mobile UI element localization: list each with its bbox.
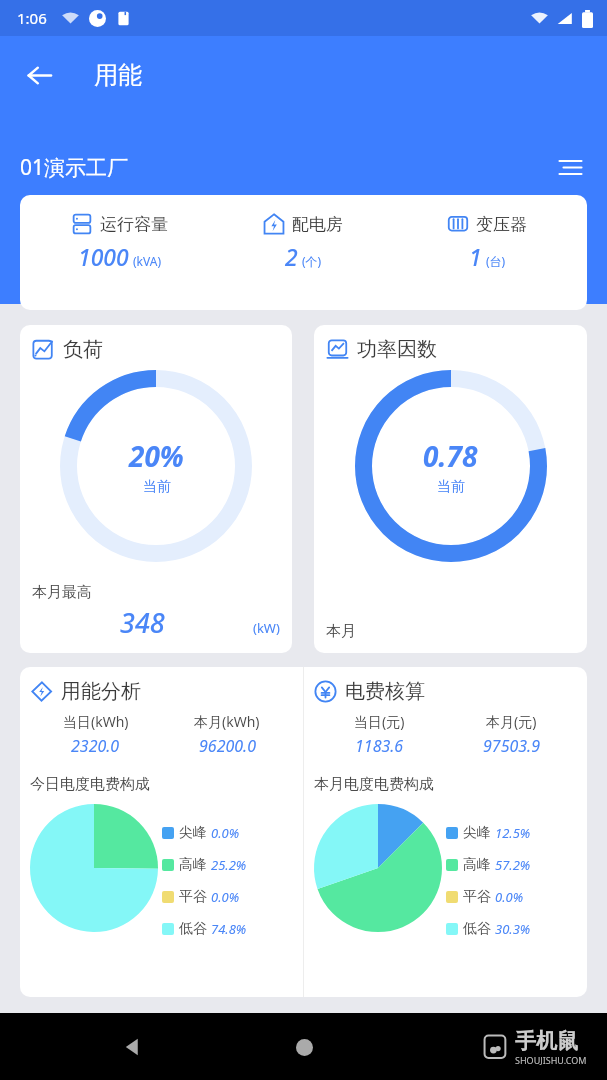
button[interactable]: Back	[20, 56, 58, 94]
staticText: 配电房	[292, 214, 343, 235]
staticText: 本月(元)	[486, 712, 537, 731]
staticText: 01演示工厂	[20, 153, 129, 182]
staticText: (kVA)	[133, 253, 161, 269]
staticText: 功率因数	[357, 337, 437, 362]
staticText: 1183.6	[355, 735, 404, 757]
staticText: 本月最高	[32, 583, 92, 602]
staticText: 74.8%	[211, 920, 247, 938]
staticText: 尖峰	[179, 824, 207, 842]
staticText: 平谷	[179, 888, 207, 906]
staticText: 本月(kWh)	[194, 712, 260, 731]
staticText: 负荷	[63, 337, 103, 362]
button[interactable]: 功率因数	[314, 325, 587, 653]
button[interactable]: 运行容量	[20, 195, 587, 310]
button[interactable]: 配电房	[211, 213, 395, 272]
staticText: 用能分析	[61, 679, 141, 704]
staticText: 20%	[129, 437, 184, 475]
button[interactable]: 用能分析	[20, 667, 303, 997]
button[interactable]: 负荷	[20, 325, 292, 653]
staticText: 低谷	[463, 920, 491, 938]
staticText: 0.78	[423, 437, 478, 475]
staticText: 本月	[326, 622, 356, 641]
staticText: 2320.0	[71, 735, 120, 757]
staticText: 12.5%	[495, 824, 531, 842]
staticText: 今日电度电费构成	[30, 775, 150, 794]
button[interactable]: Home	[282, 1025, 326, 1069]
button[interactable]: 运行容量	[28, 213, 211, 272]
staticText: 0.0%	[495, 888, 524, 906]
staticText: 电费核算	[345, 679, 425, 704]
staticText: 变压器	[476, 214, 527, 235]
button[interactable]: 变压器	[395, 213, 579, 272]
staticText: 348	[120, 604, 165, 641]
staticText: (kW)	[253, 619, 280, 637]
staticText: 0.0%	[211, 824, 240, 842]
button[interactable]: 电费核算	[304, 667, 587, 997]
staticText: 96200.0	[199, 735, 256, 757]
staticText: 30.3%	[495, 920, 531, 938]
staticText: 尖峰	[463, 824, 491, 842]
staticText: 1000	[78, 241, 129, 272]
staticText: 25.2%	[211, 856, 247, 874]
button[interactable]: Menu	[551, 148, 589, 186]
staticText: 当日(元)	[354, 712, 405, 731]
staticText: 本月电度电费构成	[314, 775, 434, 794]
staticText: 低谷	[179, 920, 207, 938]
staticText: 1:06	[17, 8, 47, 28]
staticText: 57.2%	[495, 856, 531, 874]
staticText: 0.0%	[211, 888, 240, 906]
staticText: (个)	[302, 253, 322, 269]
staticText: 用能	[94, 60, 142, 90]
staticText: 手机鼠	[515, 1028, 578, 1054]
staticText: (台)	[486, 253, 506, 269]
staticText: SHOUJISHU.COM	[515, 1054, 587, 1066]
staticText: 高峰	[463, 856, 491, 874]
staticText: 当日(kWh)	[63, 712, 129, 731]
staticText: 高峰	[179, 856, 207, 874]
staticText: 平谷	[463, 888, 491, 906]
staticText: 当前	[437, 478, 465, 496]
staticText: 运行容量	[100, 214, 168, 235]
staticText: 当前	[143, 478, 171, 496]
staticText: 97503.9	[483, 735, 540, 757]
staticText: 1	[469, 241, 482, 272]
button[interactable]: Back	[110, 1025, 154, 1069]
staticText: 2	[285, 241, 298, 272]
